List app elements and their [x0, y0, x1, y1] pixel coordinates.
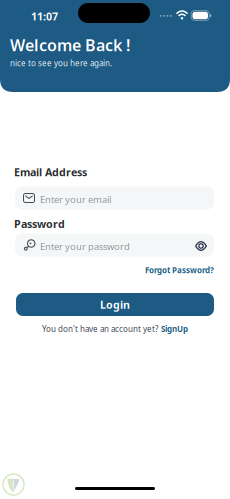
staticText: You don't have an account yet? [42, 323, 158, 334]
button[interactable]: Forgot Password? [145, 265, 214, 275]
staticText: Email Address [14, 165, 87, 179]
button[interactable]: Enter your password [15, 233, 214, 256]
staticText: Forgot Password? [145, 265, 214, 275]
staticText: Login [100, 297, 130, 312]
button[interactable]: SignUp [161, 323, 188, 334]
staticText: Enter your email [40, 193, 111, 206]
staticText: Enter your password [40, 240, 130, 253]
button[interactable] [195, 241, 207, 251]
staticText: 11:07 [31, 9, 58, 23]
staticText: Welcome Back ! [10, 34, 130, 56]
staticText: Password [14, 217, 65, 231]
staticText: nice to see you here again. [10, 58, 112, 68]
button[interactable]: Enter your email [15, 186, 214, 209]
staticText: SignUp [161, 323, 188, 334]
button[interactable]: Login [16, 293, 214, 316]
